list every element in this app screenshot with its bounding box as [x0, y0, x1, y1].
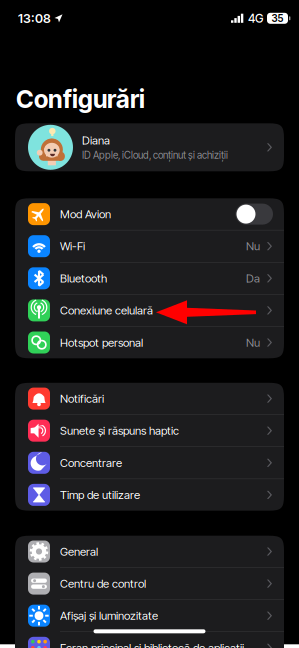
- staticText: Sunete și răspuns haptic: [60, 424, 179, 438]
- button[interactable]: Afișaj și luminozitate: [15, 600, 284, 632]
- button[interactable]: Concentrare: [15, 447, 284, 479]
- staticText: Notificări: [60, 392, 104, 406]
- staticText: Diana: [82, 133, 110, 147]
- button[interactable]: General: [15, 536, 284, 568]
- button[interactable]: Conexiune celulară: [15, 295, 284, 327]
- button[interactable]: Sunete și răspuns haptic: [15, 415, 284, 447]
- button[interactable]: Diana: [0, 123, 299, 171]
- staticText: ID Apple, iCloud, conținut și achiziții: [82, 149, 228, 161]
- staticText: 4G: [248, 11, 263, 25]
- staticText: Centru de control: [60, 577, 146, 591]
- staticText: Ecran principal și bibliotecă de aplicaț…: [60, 641, 244, 648]
- staticText: Conexiune celulară: [60, 303, 153, 317]
- button[interactable]: Notificări: [15, 383, 284, 415]
- staticText: Timp de utilizare: [60, 488, 140, 502]
- staticText: Hotspot personal: [60, 336, 143, 349]
- staticText: 13:08: [18, 11, 51, 26]
- staticText: Mod Avion: [60, 207, 111, 221]
- staticText: Afișaj și luminozitate: [60, 609, 158, 623]
- staticText: Nu: [246, 239, 260, 253]
- staticText: Nu: [246, 336, 260, 349]
- button[interactable]: Hotspot personal: [15, 327, 284, 358]
- staticText: Bluetooth: [60, 271, 107, 285]
- button[interactable]: Wi-Fi: [15, 230, 284, 262]
- staticText: Wi-Fi: [60, 239, 85, 253]
- staticText: Concentrare: [60, 456, 122, 470]
- button[interactable]: Centru de control: [15, 568, 284, 600]
- staticText: General: [60, 545, 98, 558]
- button[interactable]: Bluetooth: [15, 262, 284, 295]
- staticText: Da: [246, 271, 260, 285]
- button[interactable]: Ecran principal și bibliotecă de aplicaț…: [15, 632, 284, 648]
- button[interactable]: Timp de utilizare: [15, 479, 284, 511]
- staticText: 35: [271, 12, 283, 24]
- button[interactable]: Mod Avion: [15, 198, 284, 230]
- staticText: Configurări: [16, 84, 145, 114]
